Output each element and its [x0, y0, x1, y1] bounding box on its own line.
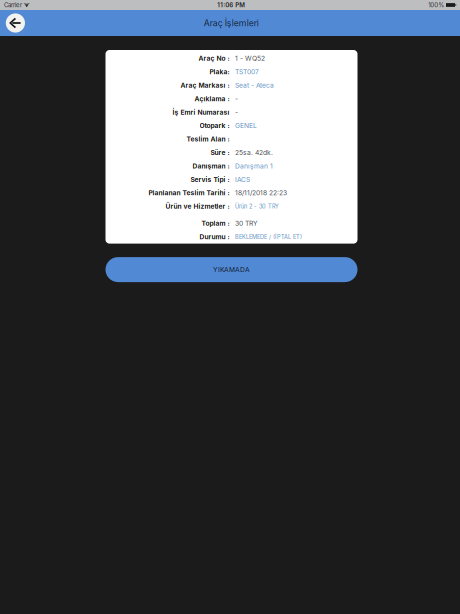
- staticText: İş Emri Numarası: [172, 108, 229, 116]
- staticText: 100%: [428, 1, 444, 9]
- button[interactable]: GENEL: [235, 119, 257, 132]
- staticText: IACS: [235, 175, 250, 183]
- button[interactable]: Danışman 1: [235, 159, 273, 173]
- staticText: Durumu :: [199, 233, 229, 241]
- staticText: Plaka:: [209, 68, 229, 76]
- staticText: BEKLEMEDE / (İPTAL ET): [235, 233, 302, 240]
- staticText: Carrier: [4, 1, 22, 9]
- staticText: 18/11/2018 22:23: [235, 189, 287, 197]
- staticText: GENEL: [235, 122, 257, 130]
- staticText: Servis Tipi :: [190, 175, 229, 183]
- staticText: Otopark :: [199, 122, 229, 130]
- button[interactable]: TST007: [235, 65, 259, 79]
- staticText: TST007: [235, 68, 259, 76]
- staticText: -: [235, 108, 238, 116]
- staticText: 30 TRY: [235, 219, 258, 227]
- button[interactable]: BEKLEMEDE / (İPTAL ET): [235, 230, 302, 243]
- staticText: Danışman 1: [235, 162, 273, 170]
- staticText: Araç İşlemleri: [204, 18, 259, 28]
- staticText: 1 - WQ52: [235, 54, 265, 62]
- button[interactable]: Ürün 2 - 30 TRY: [235, 200, 279, 213]
- staticText: -: [235, 95, 238, 103]
- button[interactable]: Seat - Ateca: [235, 79, 274, 92]
- staticText: Ürün 2 - 30 TRY: [235, 203, 279, 210]
- staticText: Açıklama :: [194, 95, 229, 103]
- staticText: Süre :: [210, 148, 229, 157]
- staticText: Danışman :: [192, 162, 229, 170]
- staticText: Ürün ve Hizmetler :: [165, 202, 229, 210]
- button[interactable]: IACS: [235, 173, 250, 186]
- staticText: Araç No :: [198, 54, 229, 62]
- staticText: 11:06 PM: [217, 1, 245, 9]
- staticText: Araç Markası :: [180, 81, 229, 89]
- staticText: 25sa. 42dk.: [235, 148, 273, 157]
- staticText: Teslim Alan :: [186, 135, 229, 143]
- button[interactable]: Back: [3, 10, 28, 36]
- staticText: Seat - Ateca: [235, 81, 274, 89]
- staticText: YIKAMADA: [213, 266, 250, 274]
- staticText: Planlanan Teslim Tarihi :: [148, 189, 229, 197]
- button[interactable]: YIKAMADA: [105, 257, 357, 282]
- staticText: Toplam :: [201, 219, 229, 227]
